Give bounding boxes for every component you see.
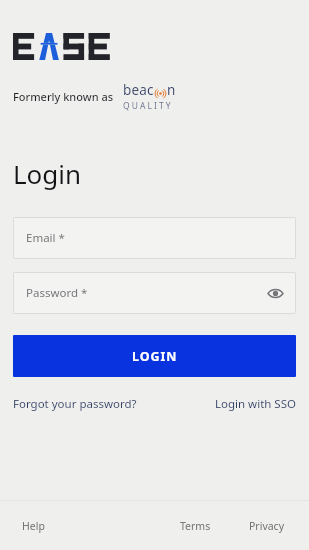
button[interactable]: Login with SSO [215,393,296,415]
staticText: beac [123,81,154,99]
button[interactable]: Forgot your password? [13,393,137,415]
button[interactable]: LOGIN [13,335,296,377]
staticText: Login [13,156,82,191]
staticText: n [167,81,176,99]
staticText: Forgot your password? [13,396,137,412]
button[interactable]: Privacy [249,513,285,539]
button[interactable]: Email * [13,217,296,259]
staticText: QUALITY [123,100,173,112]
staticText: Formerly known as [13,89,114,104]
staticText: Terms [180,519,211,533]
staticText: Help [22,519,45,533]
staticText: Password * [26,285,88,301]
button[interactable]: Show password [262,280,288,306]
button[interactable]: Help [22,513,45,539]
button[interactable]: Password * [13,272,296,314]
button[interactable]: Terms [180,513,211,539]
staticText: LOGIN [132,348,178,365]
staticText: Privacy [249,519,285,533]
staticText: Email * [26,230,65,246]
staticText: Login with SSO [215,396,296,412]
